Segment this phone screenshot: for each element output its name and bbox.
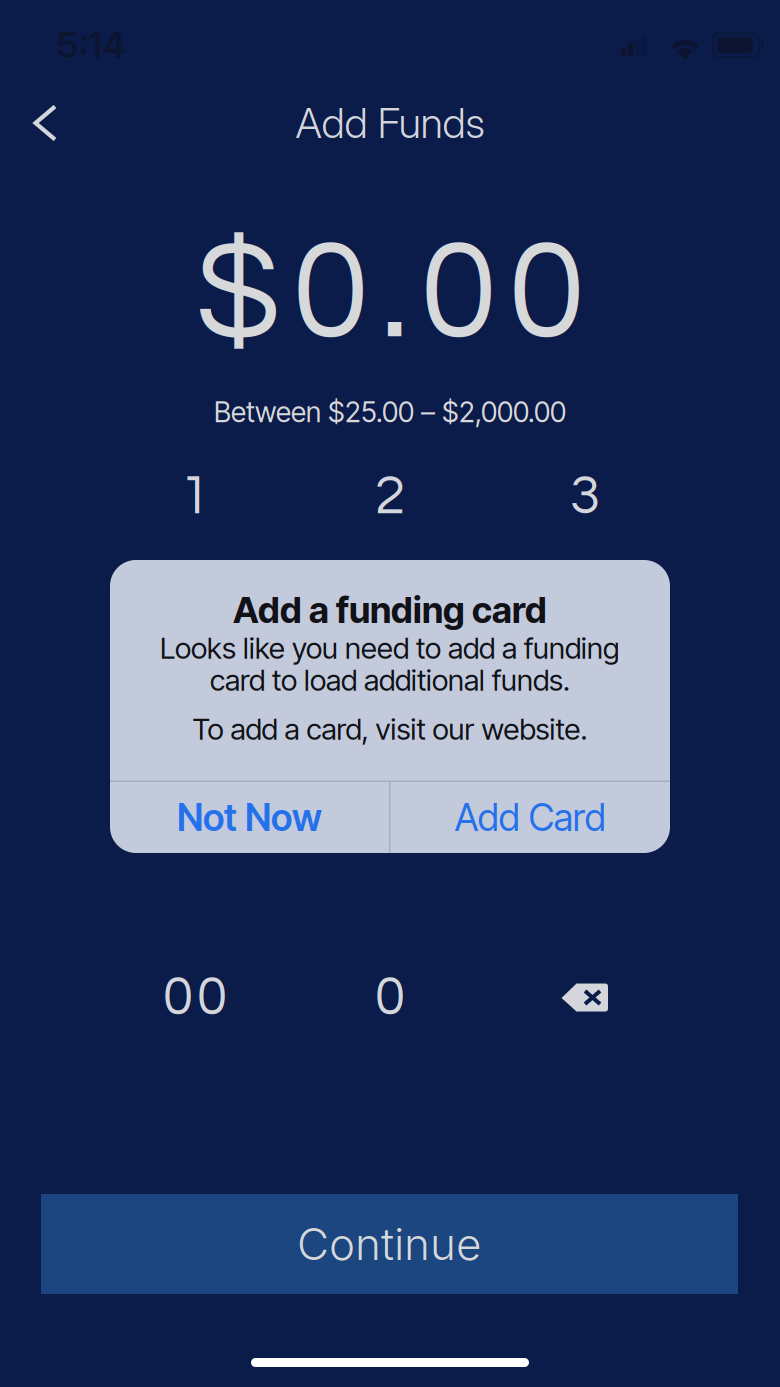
- button[interactable]: 5: [292, 580, 487, 747]
- staticText: 8: [375, 802, 405, 859]
- staticText: 00: [163, 969, 227, 1026]
- button[interactable]: 1: [97, 413, 292, 580]
- button[interactable]: Add Card: [390, 782, 670, 853]
- button[interactable]: 4: [97, 580, 292, 747]
- button[interactable]: Not Now: [110, 782, 389, 853]
- button[interactable]: 3: [487, 413, 682, 580]
- staticText: $0.00: [195, 223, 584, 365]
- staticText: 4: [180, 635, 210, 692]
- staticText: Between $25.00 – $2,000.00: [214, 395, 566, 429]
- button[interactable]: Delete: [487, 914, 682, 1081]
- staticText: 5: [375, 635, 405, 692]
- staticText: card to load additional funds.: [210, 662, 570, 698]
- button[interactable]: Back: [0, 88, 86, 158]
- staticText: 0: [375, 969, 405, 1026]
- staticText: Add Funds: [295, 98, 484, 148]
- button[interactable]: 0: [292, 914, 487, 1081]
- staticText: Add a funding card: [233, 588, 547, 632]
- staticText: Looks like you need to add a funding: [160, 630, 620, 666]
- button[interactable]: Continue: [41, 1194, 738, 1294]
- button[interactable]: 7: [97, 747, 292, 914]
- button[interactable]: 9: [487, 747, 682, 914]
- staticText: To add a card, visit our website.: [192, 711, 587, 747]
- staticText: Continue: [297, 1217, 482, 1271]
- staticText: Add Card: [455, 795, 606, 840]
- staticText: 1: [180, 468, 210, 525]
- staticText: 3: [570, 468, 600, 525]
- button[interactable]: 8: [292, 747, 487, 914]
- button[interactable]: 2: [292, 413, 487, 580]
- button[interactable]: 00: [97, 914, 292, 1081]
- staticText: Not Now: [177, 795, 322, 840]
- button[interactable]: 6: [487, 580, 682, 747]
- staticText: 2: [375, 468, 405, 525]
- staticText: 9: [570, 802, 600, 859]
- staticText: 6: [570, 635, 600, 692]
- staticText: 7: [180, 802, 210, 859]
- staticText: 5:14: [57, 23, 125, 67]
